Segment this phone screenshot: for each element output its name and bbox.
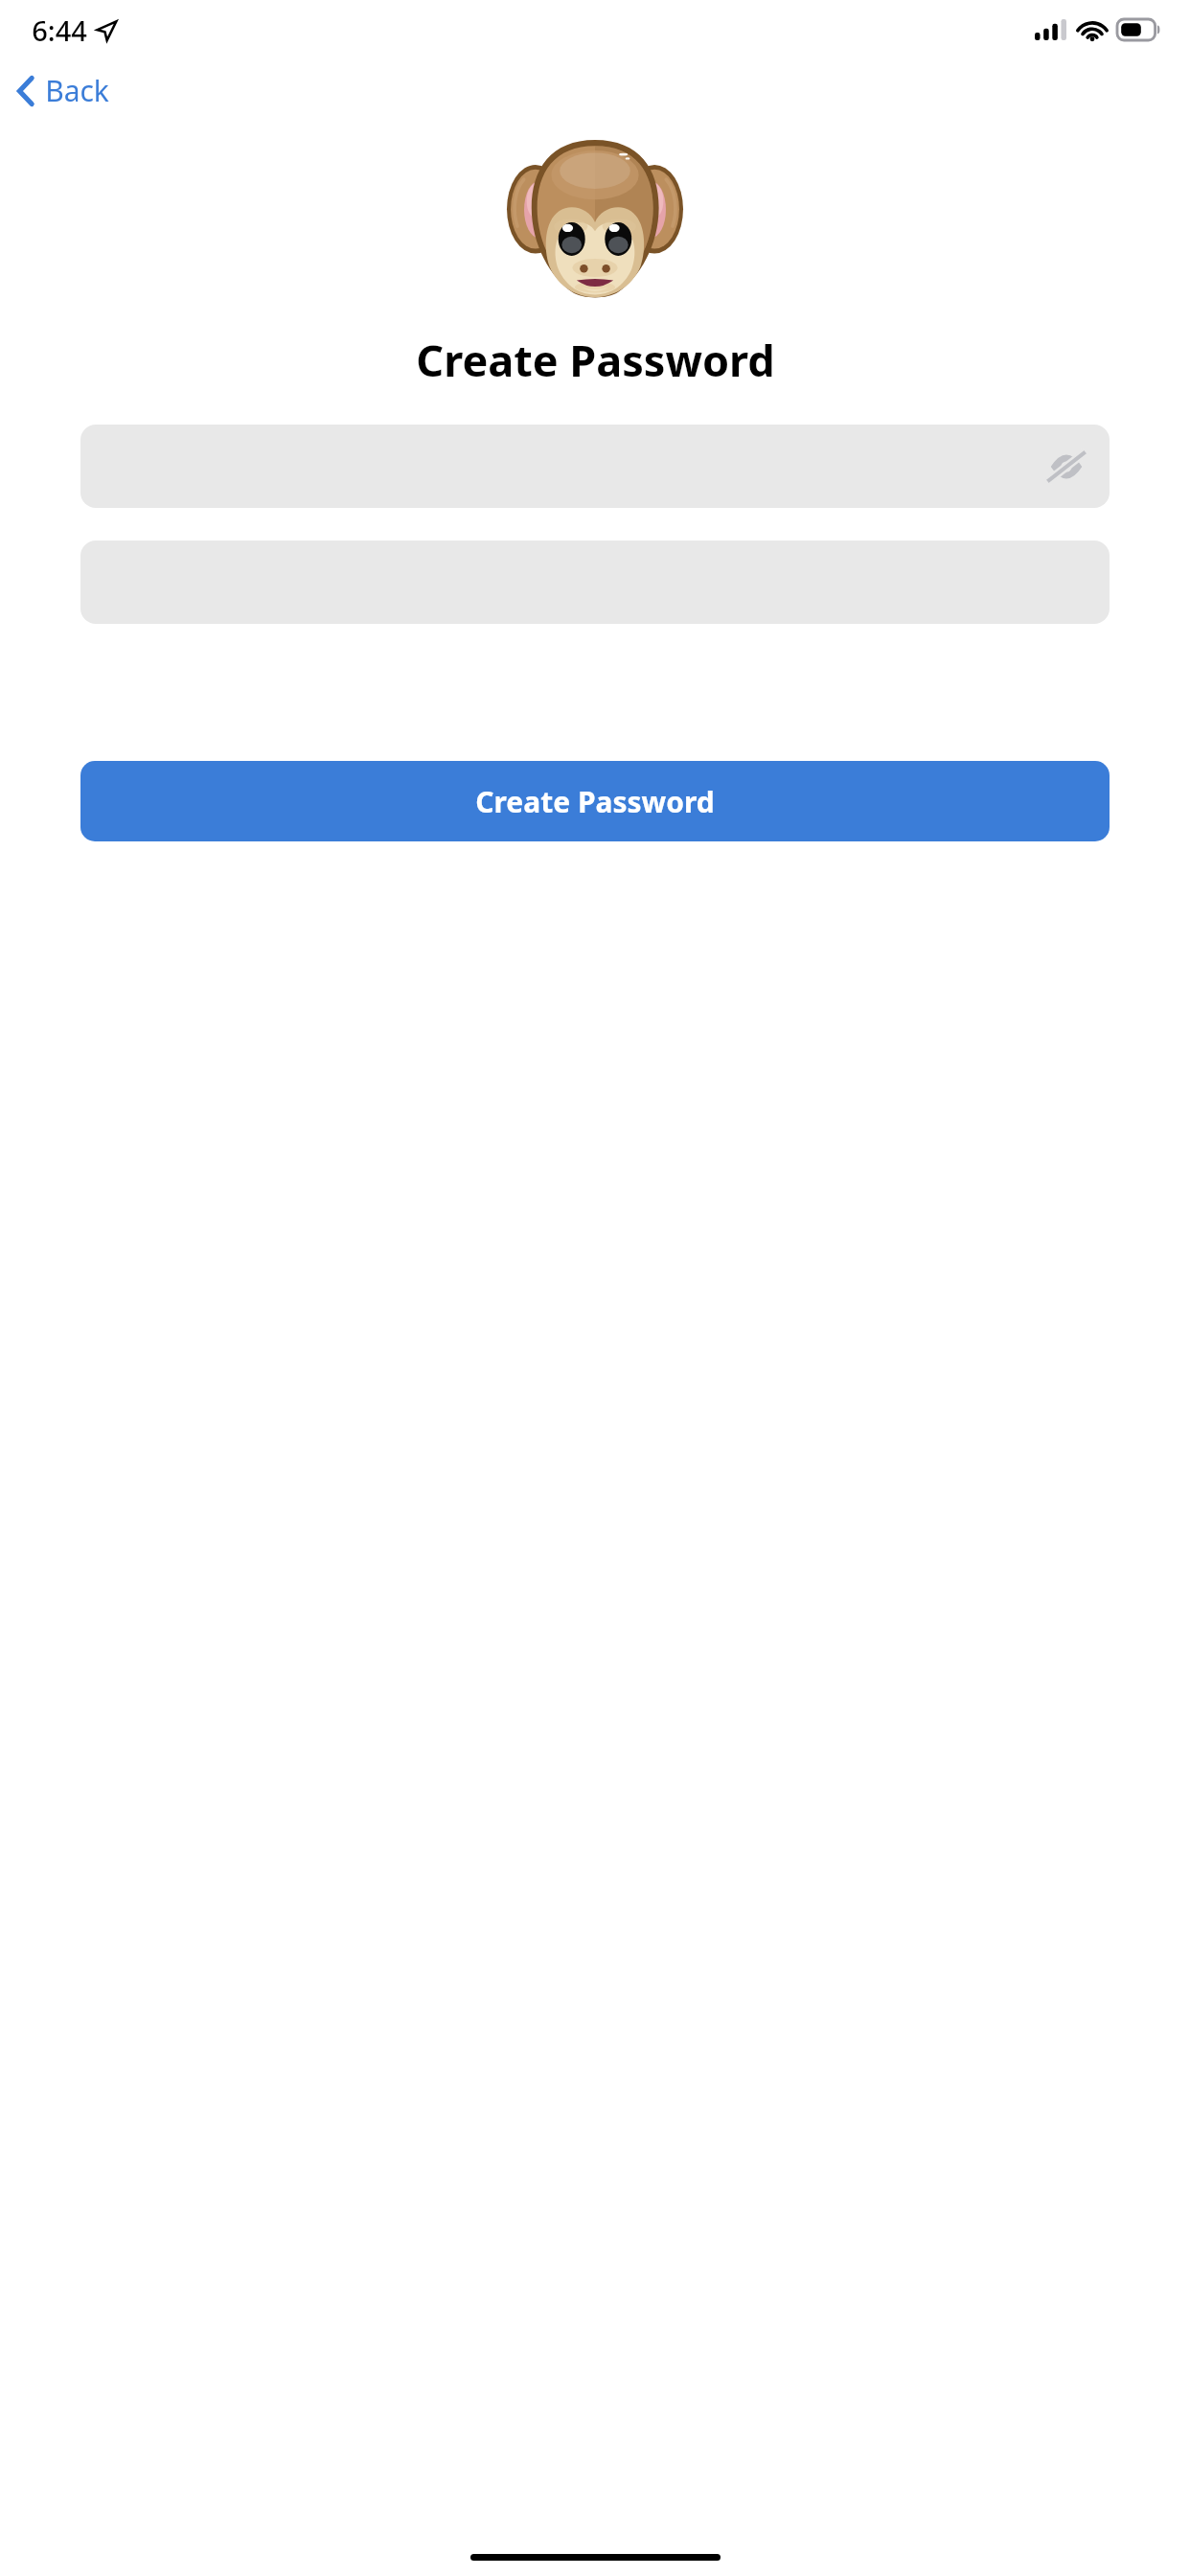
staticText: 6:44 — [32, 11, 87, 49]
staticText: Create Password — [475, 782, 715, 821]
staticText: Back — [45, 71, 109, 110]
button[interactable]: Back — [10, 65, 115, 116]
button[interactable]: Show password — [1042, 443, 1090, 491]
button[interactable]: Create Password — [80, 761, 1110, 841]
button[interactable]: Show password — [80, 425, 1110, 508]
staticText: Create Password — [416, 331, 775, 389]
